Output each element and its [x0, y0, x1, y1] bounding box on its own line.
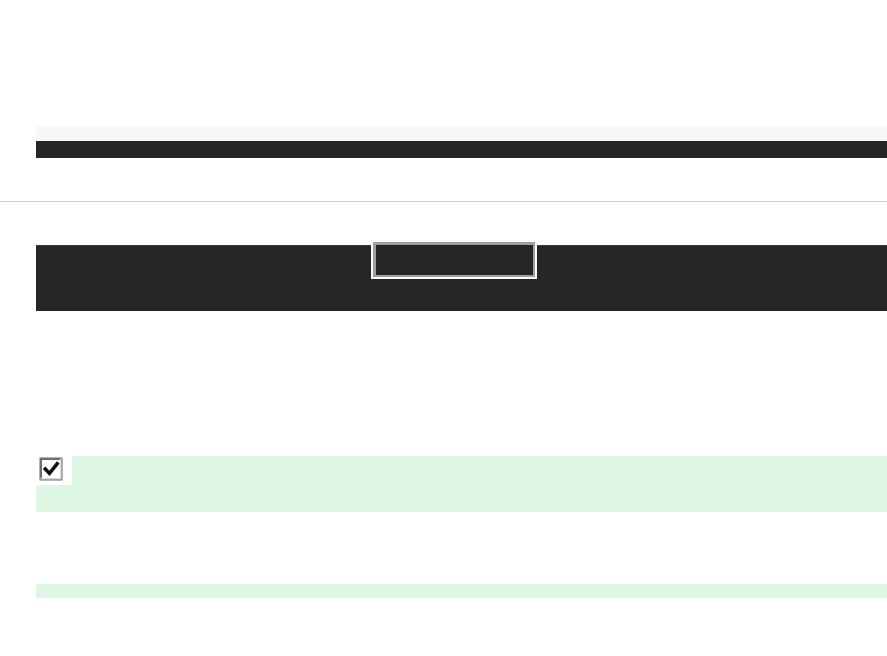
button[interactable]: Button [371, 240, 537, 279]
button[interactable]: Checked checkbox [36, 456, 72, 485]
button[interactable] [36, 456, 887, 512]
